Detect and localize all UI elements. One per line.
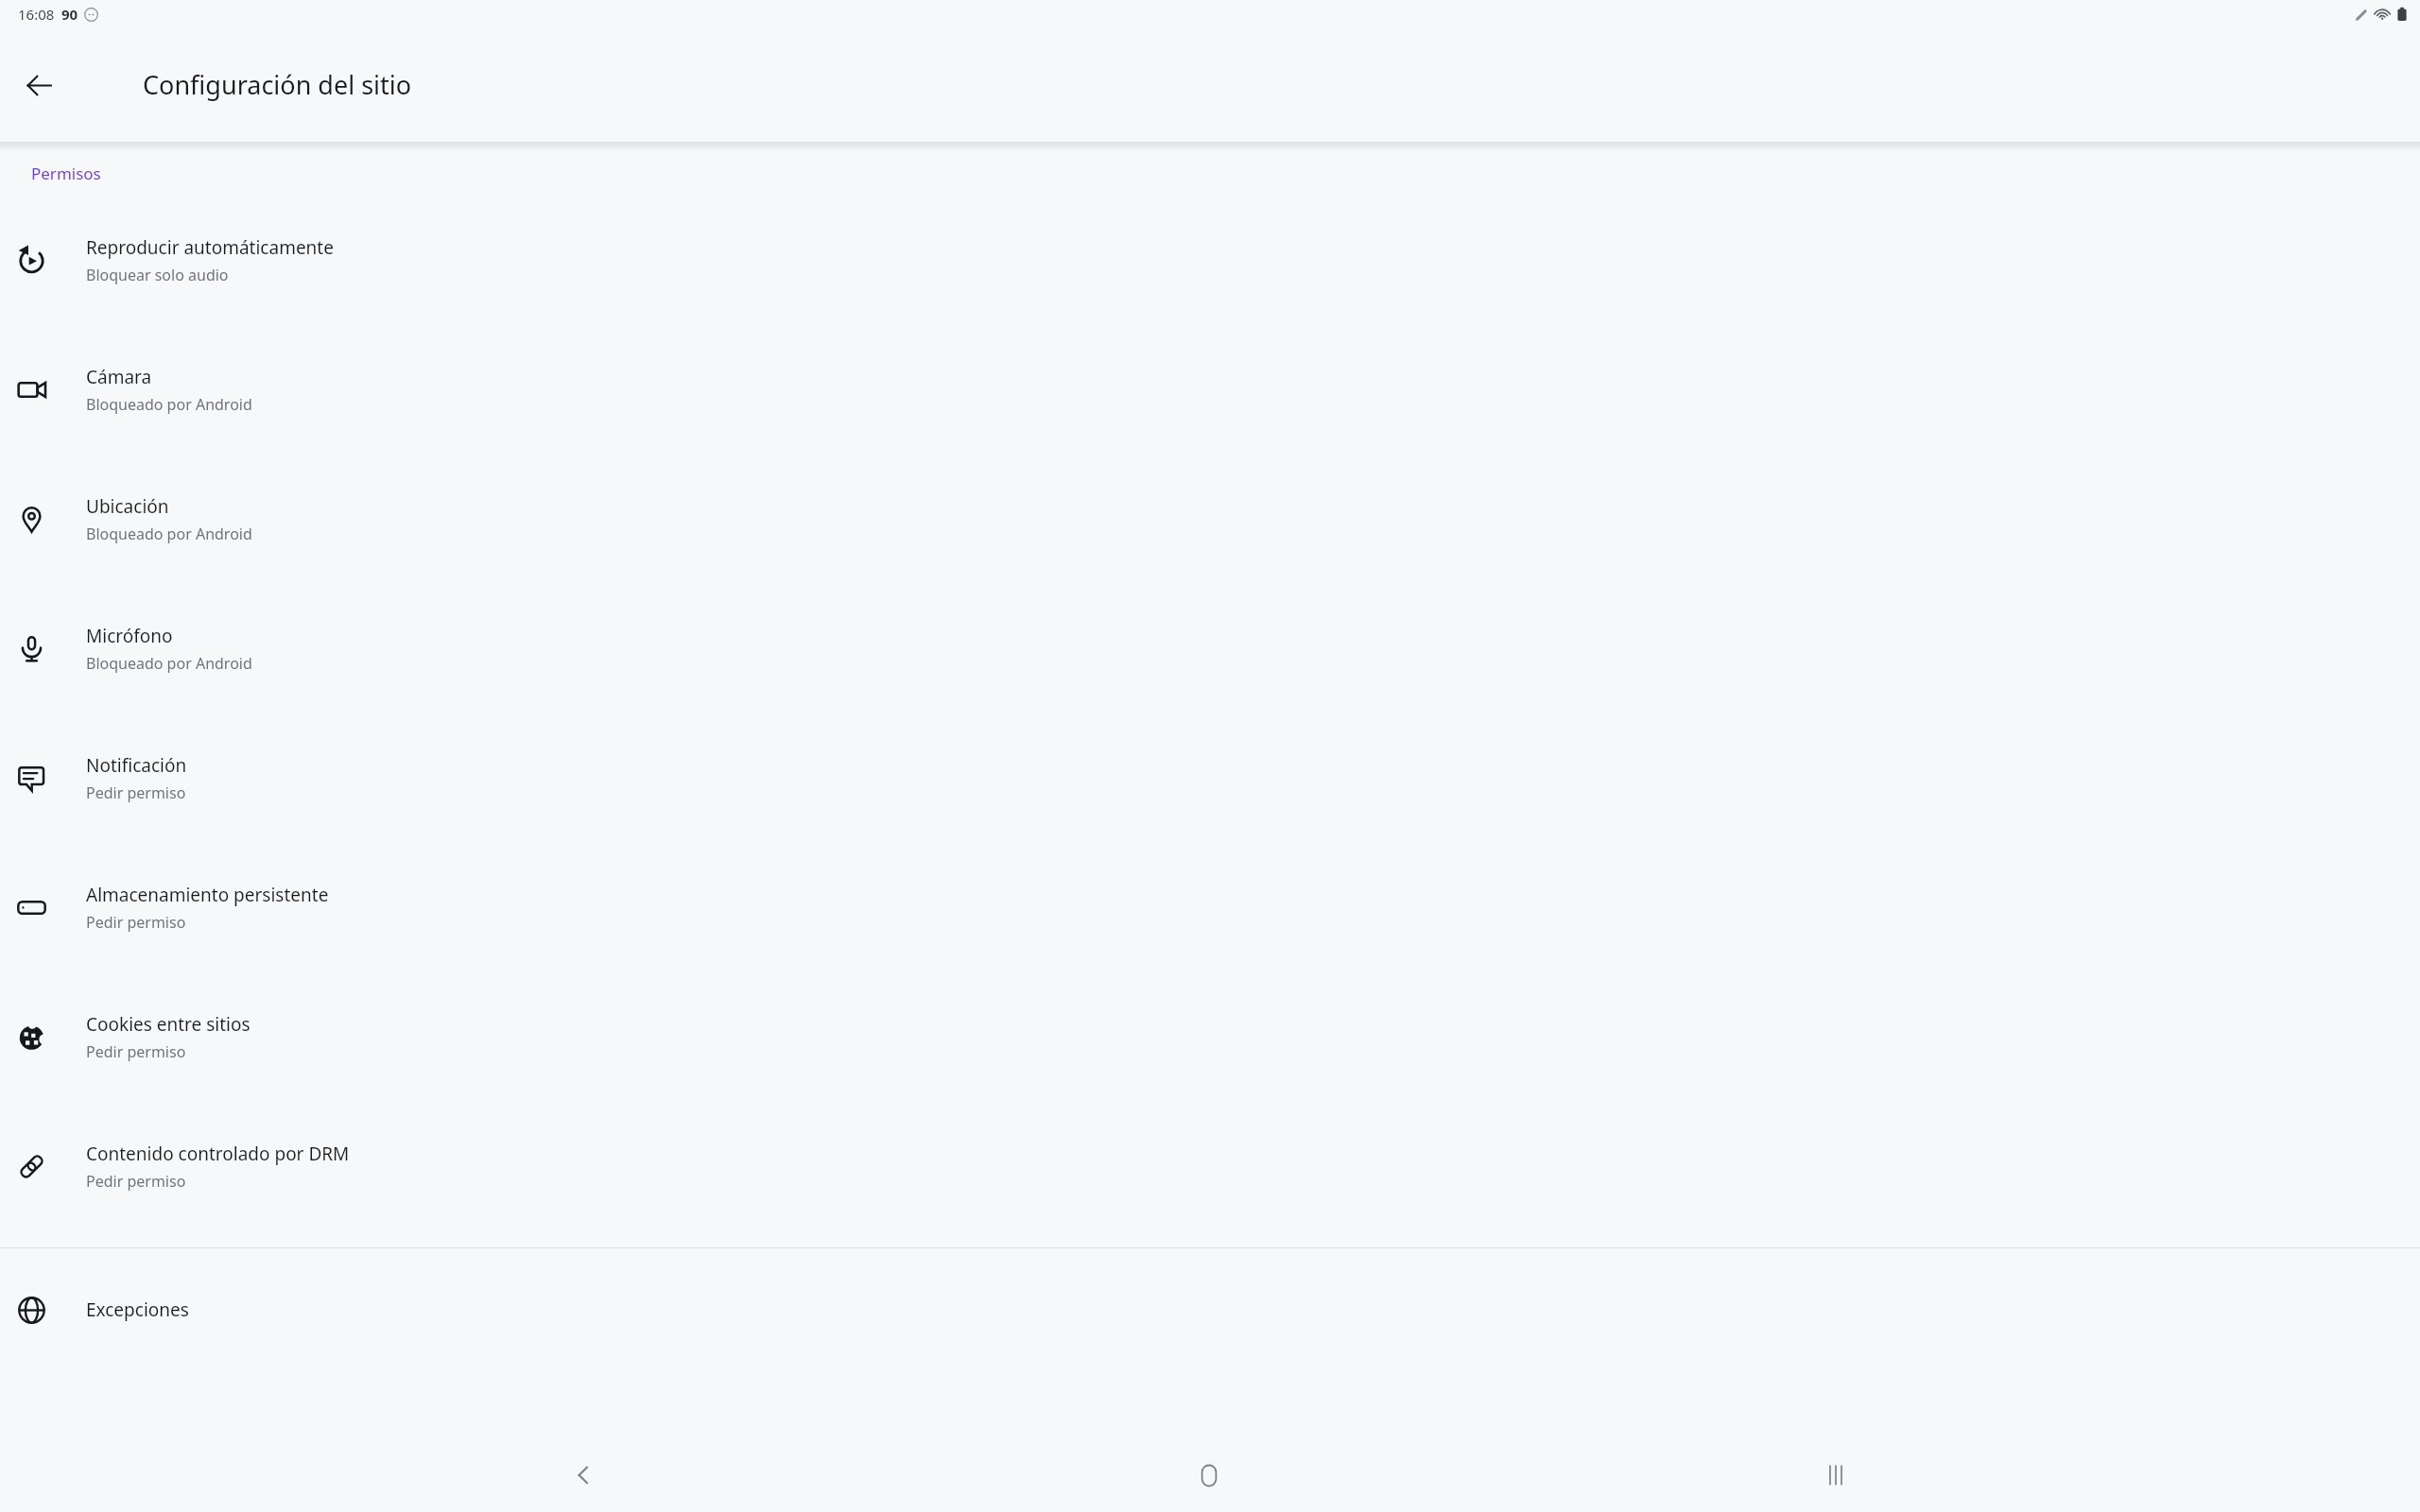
staticText: Cámara — [86, 365, 152, 389]
button[interactable]: Atrás — [16, 62, 61, 108]
button[interactable]: Cookies entre sitios — [0, 972, 2420, 1102]
staticText: Excepciones — [86, 1297, 189, 1322]
staticText: Cookies entre sitios — [86, 1012, 251, 1037]
button[interactable]: Recientes — [1793, 1438, 1878, 1512]
button[interactable]: Reproducir automáticamente — [0, 196, 2420, 325]
button[interactable]: Inicio — [1167, 1438, 1252, 1512]
staticText: Pedir permiso — [86, 1041, 186, 1062]
staticText: Notificación — [86, 753, 187, 778]
staticText: Bloqueado por Android — [86, 653, 252, 674]
button[interactable]: Almacenamiento persistente — [0, 843, 2420, 972]
staticText: Permisos — [31, 163, 101, 184]
button[interactable]: Micrófono — [0, 584, 2420, 713]
staticText: Reproducir automáticamente — [86, 235, 334, 260]
staticText: Pedir permiso — [86, 782, 186, 803]
staticText: Pedir permiso — [86, 1171, 186, 1192]
staticText: Configuración del sitio — [143, 67, 412, 102]
staticText: 16:08 — [18, 5, 55, 24]
staticText: Almacenamiento persistente — [86, 883, 329, 907]
button[interactable]: Cámara — [0, 325, 2420, 455]
button[interactable]: Atrás — [541, 1438, 626, 1512]
staticText: 90 — [61, 5, 78, 24]
staticText: Micrófono — [86, 624, 173, 648]
staticText: Bloquear solo audio — [86, 265, 229, 285]
button[interactable]: Ubicación — [0, 455, 2420, 584]
staticText: Contenido controlado por DRM — [86, 1142, 350, 1166]
button[interactable]: Notificación — [0, 713, 2420, 843]
staticText: Pedir permiso — [86, 912, 186, 933]
button[interactable]: Excepciones — [0, 1267, 2420, 1352]
staticText: Bloqueado por Android — [86, 394, 252, 415]
button[interactable]: Contenido controlado por DRM — [0, 1102, 2420, 1231]
staticText: Ubicación — [86, 494, 169, 519]
staticText: Bloqueado por Android — [86, 524, 252, 544]
